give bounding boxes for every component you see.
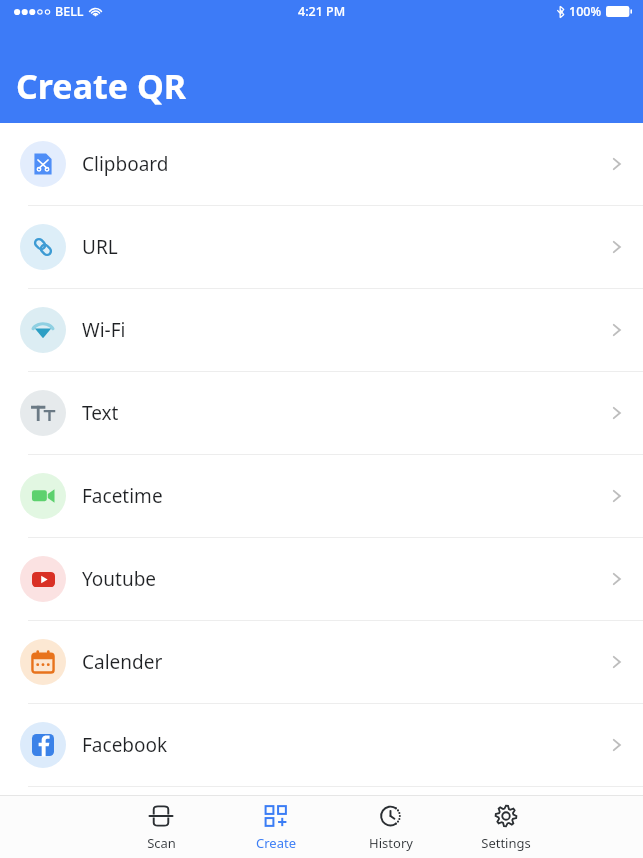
button[interactable]: History — [333, 796, 448, 858]
button[interactable]: Clipboard — [0, 123, 643, 205]
staticText: History — [369, 834, 413, 852]
staticText: Text — [82, 400, 119, 426]
staticText: Clipboard — [82, 151, 169, 177]
button[interactable]: Settings — [448, 796, 563, 858]
staticText: 4:21 PM — [298, 3, 346, 20]
button[interactable]: URL — [0, 206, 643, 288]
staticText: Calender — [82, 649, 163, 675]
button[interactable]: Youtube — [0, 538, 643, 620]
staticText: BELL — [55, 3, 84, 20]
staticText: Scan — [147, 834, 176, 852]
button[interactable]: Wi-Fi — [0, 289, 643, 371]
button[interactable]: Calender — [0, 621, 643, 703]
staticText: 100% — [569, 3, 602, 20]
staticText: Create — [256, 834, 296, 852]
button[interactable]: Create — [218, 796, 333, 858]
button[interactable]: Text — [0, 372, 643, 454]
staticText: Wi-Fi — [82, 317, 126, 343]
staticText: Facebook — [82, 732, 168, 758]
button[interactable]: Facetime — [0, 455, 643, 537]
button[interactable]: Scan — [104, 796, 218, 858]
staticText: Settings — [481, 834, 531, 852]
staticText: URL — [82, 234, 118, 260]
staticText: Facetime — [82, 483, 163, 509]
button[interactable]: Facebook — [0, 704, 643, 786]
staticText: Create QR — [16, 63, 187, 109]
staticText: Youtube — [82, 566, 157, 592]
